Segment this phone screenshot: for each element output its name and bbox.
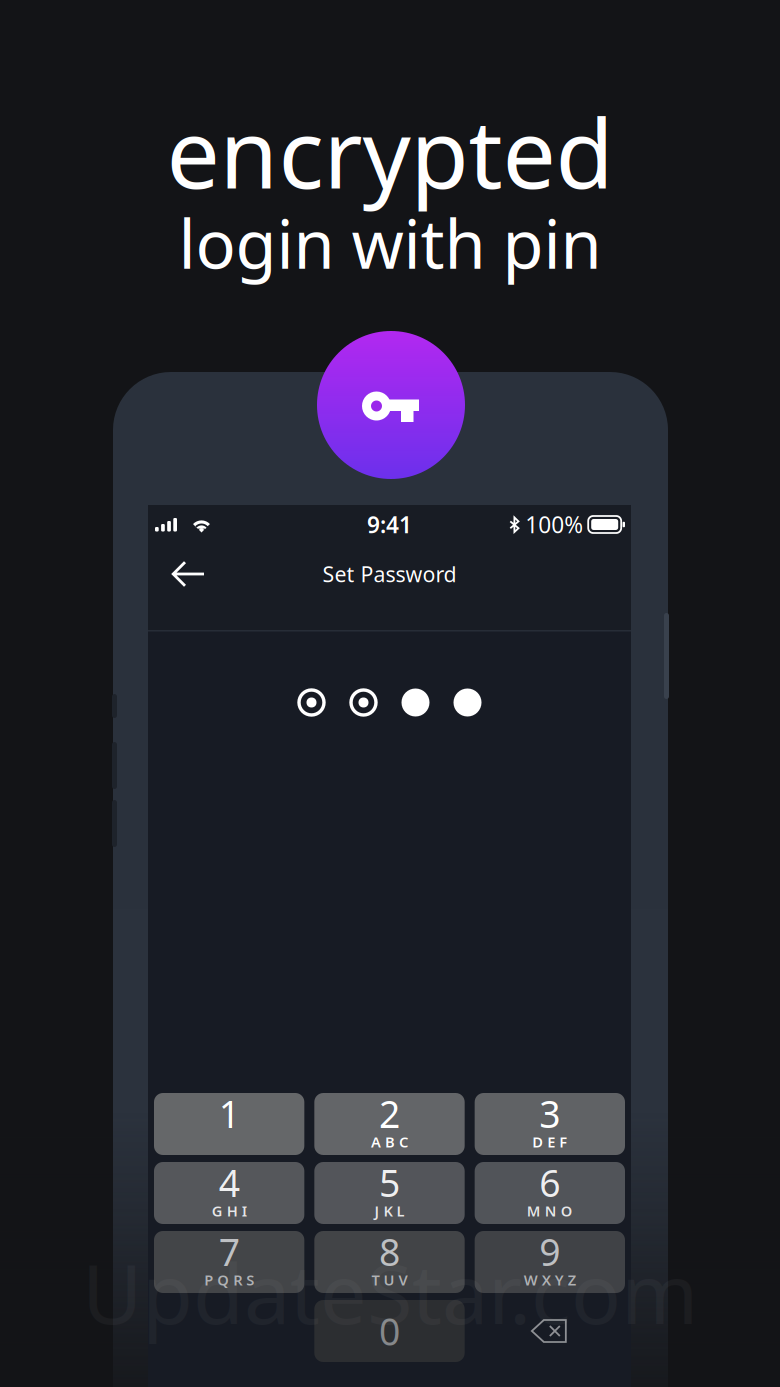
staticText: encrypted: [166, 89, 613, 215]
staticText: 7: [219, 1227, 240, 1276]
staticText: 6: [539, 1158, 560, 1207]
staticText: D E F: [532, 1132, 567, 1151]
button[interactable]: 8: [314, 1231, 465, 1293]
button[interactable]: 5: [314, 1162, 465, 1224]
button[interactable]: Back: [148, 546, 219, 602]
button[interactable]: 6: [475, 1162, 625, 1224]
staticText: 9:41: [367, 509, 412, 539]
staticText: 2: [379, 1089, 400, 1138]
staticText: 8: [379, 1227, 400, 1276]
staticText: Set Password: [322, 560, 456, 588]
staticText: W X Y Z: [524, 1270, 576, 1289]
button[interactable]: 1: [154, 1093, 304, 1155]
staticText: login with pin: [178, 199, 601, 287]
staticText: J K L: [374, 1201, 404, 1220]
staticText: P Q R S: [204, 1270, 254, 1289]
staticText: 1: [219, 1089, 240, 1138]
button[interactable]: Delete: [475, 1300, 625, 1362]
staticText: 0: [379, 1306, 400, 1356]
button[interactable]: 9: [475, 1231, 625, 1293]
staticText: 9: [539, 1227, 560, 1276]
staticText: A B C: [371, 1132, 408, 1151]
staticText: 5: [379, 1158, 400, 1207]
button[interactable]: 2: [314, 1093, 465, 1155]
staticText: 4: [219, 1158, 240, 1207]
button[interactable]: 4: [154, 1162, 304, 1224]
staticText: 3: [539, 1089, 560, 1138]
button[interactable]: 3: [475, 1093, 625, 1155]
button[interactable]: 7: [154, 1231, 304, 1293]
staticText: M N O: [527, 1201, 573, 1220]
staticText: UpdateStar.com: [82, 1237, 698, 1347]
staticText: T U V: [371, 1270, 407, 1289]
staticText: 100%: [525, 509, 583, 539]
button[interactable]: 0: [314, 1300, 465, 1362]
staticText: G H I: [212, 1201, 247, 1220]
